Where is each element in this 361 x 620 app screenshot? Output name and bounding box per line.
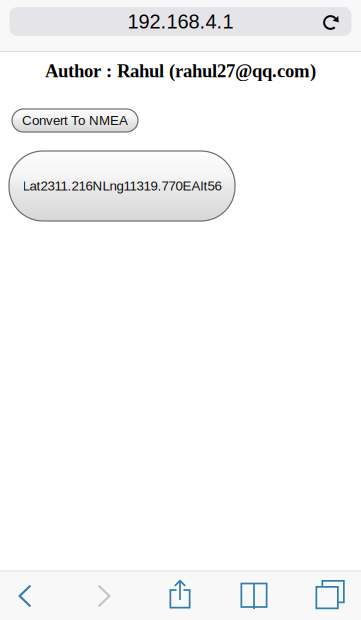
staticText: Lat2311.216NLng11319.770EAlt56 [22, 179, 221, 193]
button[interactable]: Tabs [306, 571, 353, 620]
button[interactable]: Bookmarks [202, 571, 306, 620]
button[interactable]: 192.168.4.1 [9, 7, 351, 36]
button[interactable]: Convert To NMEA [12, 109, 138, 132]
button[interactable]: Lat2311.216NLng11319.770EAlt56 [9, 151, 235, 221]
staticText: 192.168.4.1 [127, 10, 233, 33]
button[interactable]: Forward [50, 571, 158, 620]
button[interactable]: Share [158, 571, 202, 620]
staticText: Convert To NMEA [22, 113, 128, 128]
staticText: Author : Rahul (rahul27@qq.com) [45, 61, 316, 81]
button[interactable]: Back [0, 571, 50, 620]
